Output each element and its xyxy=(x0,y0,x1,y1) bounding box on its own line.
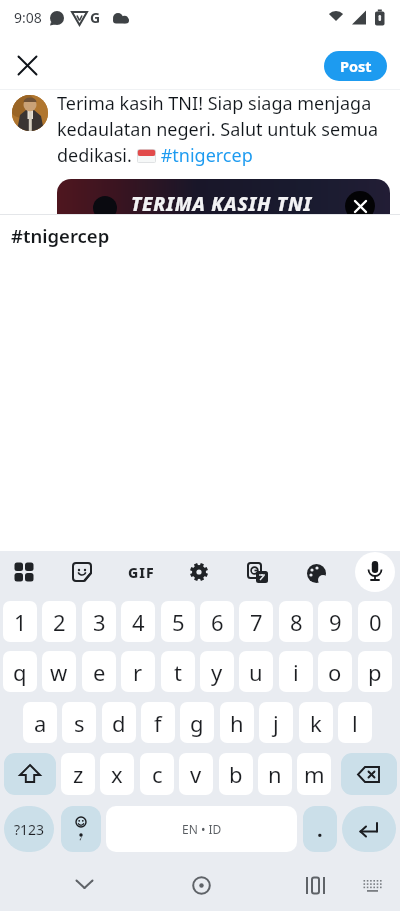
button[interactable]: #tnigercep xyxy=(11,223,110,248)
staticText: 6 xyxy=(211,607,224,637)
staticText: j xyxy=(273,708,279,738)
button[interactable]: m xyxy=(297,753,331,795)
button[interactable]: l xyxy=(338,702,372,743)
button[interactable] xyxy=(355,552,395,592)
staticText: n xyxy=(268,759,282,789)
button[interactable] xyxy=(358,872,386,900)
button[interactable] xyxy=(185,869,217,901)
button[interactable]: 2 xyxy=(42,601,76,642)
staticText: 0 xyxy=(369,607,382,637)
button[interactable]: 1 xyxy=(3,601,37,642)
staticText: G xyxy=(90,8,101,27)
staticText: Post xyxy=(340,56,372,76)
button[interactable] xyxy=(341,753,397,795)
staticText: e xyxy=(93,657,106,687)
staticText: ?123 xyxy=(14,820,45,839)
button[interactable]: ?123 xyxy=(4,806,54,852)
button[interactable]: p xyxy=(358,651,392,692)
button[interactable]: q xyxy=(3,651,37,692)
staticText: m xyxy=(304,759,325,789)
button[interactable]: f xyxy=(141,702,175,743)
button[interactable]: c xyxy=(140,753,174,795)
staticText: q xyxy=(13,657,27,687)
staticText: EN • ID xyxy=(182,821,222,837)
button[interactable] xyxy=(299,869,331,901)
button[interactable]: i xyxy=(279,651,313,692)
button[interactable] xyxy=(303,560,329,586)
button[interactable]: 3 xyxy=(82,601,116,642)
button[interactable]: d xyxy=(102,702,136,743)
button[interactable]: . xyxy=(303,806,337,852)
staticText: 3 xyxy=(93,607,106,637)
staticText: Terima kasih TNI! Siap siaga menjaga xyxy=(57,91,372,116)
button[interactable]: b xyxy=(219,753,253,795)
button[interactable]: x xyxy=(100,753,134,795)
button[interactable]: 9 xyxy=(318,601,352,642)
staticText: . xyxy=(317,816,323,843)
staticText: r xyxy=(133,657,143,687)
staticText: w xyxy=(50,657,68,687)
staticText: b xyxy=(229,759,243,789)
button[interactable]: v xyxy=(179,753,213,795)
button[interactable]: z xyxy=(61,753,95,795)
button[interactable]: n xyxy=(258,753,292,795)
staticText: 8 xyxy=(290,607,303,637)
button[interactable]: 4 xyxy=(121,601,155,642)
button[interactable]: GIF xyxy=(124,558,158,586)
button[interactable]: s xyxy=(62,702,96,743)
button[interactable]: o xyxy=(318,651,352,692)
staticText: g xyxy=(190,708,204,738)
staticText: u xyxy=(249,657,263,687)
button[interactable]: g xyxy=(180,702,214,743)
staticText: 4 xyxy=(132,607,145,637)
button[interactable] xyxy=(4,753,56,795)
staticText: kedaulatan negeri. Salut untuk semua xyxy=(57,117,379,142)
staticText: o xyxy=(328,657,342,687)
staticText: d xyxy=(112,708,126,738)
button[interactable] xyxy=(345,191,375,214)
staticText: 5 xyxy=(172,607,185,637)
button[interactable]: 6 xyxy=(200,601,234,642)
button[interactable]: 8 xyxy=(279,601,313,642)
button[interactable]: r xyxy=(121,651,155,692)
button[interactable] xyxy=(68,868,100,900)
staticText: c xyxy=(152,759,163,789)
button[interactable]: y xyxy=(200,651,234,692)
button[interactable]: 5 xyxy=(161,601,195,642)
button[interactable] xyxy=(8,46,46,84)
staticText: l xyxy=(352,708,358,738)
button[interactable] xyxy=(70,560,94,584)
button[interactable]: w xyxy=(42,651,76,692)
button[interactable] xyxy=(187,560,211,584)
button[interactable] xyxy=(342,806,396,852)
button[interactable]: e xyxy=(82,651,116,692)
button[interactable] xyxy=(245,560,271,586)
staticText: s xyxy=(74,708,85,738)
button[interactable]: j xyxy=(259,702,293,743)
staticText: 9:08 xyxy=(14,8,42,27)
button[interactable]: h xyxy=(220,702,254,743)
button[interactable]: a xyxy=(23,702,57,743)
button[interactable]: EN • ID xyxy=(106,806,297,852)
staticText: 2 xyxy=(53,607,66,637)
button[interactable] xyxy=(61,806,101,852)
button[interactable]: k xyxy=(299,702,333,743)
button[interactable]: t xyxy=(161,651,195,692)
staticText: p xyxy=(368,657,382,687)
staticText: y xyxy=(211,657,223,687)
staticText: TERIMA KASIH TNI xyxy=(131,191,312,214)
staticText: h xyxy=(230,708,244,738)
staticText: 1 xyxy=(14,607,27,637)
staticText: v xyxy=(190,759,202,789)
staticText: x xyxy=(111,759,123,789)
button[interactable]: Post xyxy=(324,51,387,81)
button[interactable]: 0 xyxy=(358,601,392,642)
staticText: k xyxy=(310,708,322,738)
button[interactable]: 7 xyxy=(239,601,273,642)
staticText: GIF xyxy=(128,563,155,582)
button[interactable]: u xyxy=(239,651,273,692)
staticText: i xyxy=(293,657,299,687)
staticText: a xyxy=(34,708,47,738)
button[interactable] xyxy=(12,560,36,584)
staticText: t xyxy=(174,657,182,687)
